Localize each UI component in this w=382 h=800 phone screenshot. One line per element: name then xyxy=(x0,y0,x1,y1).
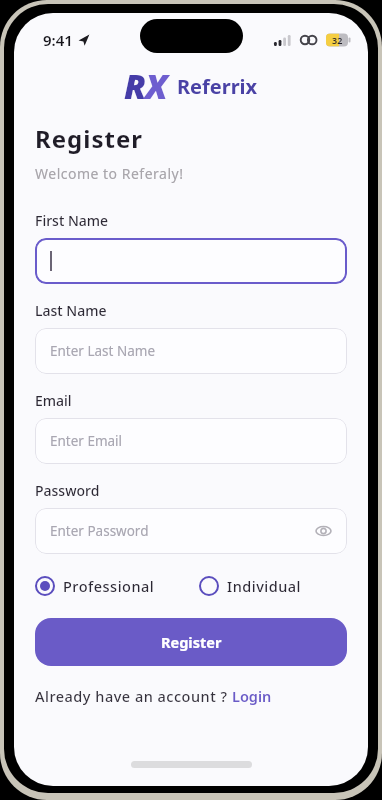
button[interactable] xyxy=(35,238,347,284)
staticText: Professional xyxy=(63,576,155,596)
staticText: Already have an account ? xyxy=(35,686,232,706)
button[interactable]: Enter Last Name xyxy=(35,328,347,374)
button[interactable]: Enter Email xyxy=(35,418,347,464)
button[interactable]: Individual xyxy=(199,576,301,596)
staticText: Enter Password xyxy=(50,522,149,540)
staticText: First Name xyxy=(35,211,109,230)
button[interactable]: Professional xyxy=(35,576,155,596)
button[interactable]: Login xyxy=(232,686,272,706)
staticText: Individual xyxy=(227,576,301,596)
staticText: 32 xyxy=(332,34,343,46)
staticText: Email xyxy=(35,391,72,410)
button[interactable]: Register xyxy=(35,618,347,666)
staticText: Password xyxy=(35,481,100,500)
staticText: Last Name xyxy=(35,301,107,320)
staticText: Register xyxy=(161,632,222,652)
staticText: R xyxy=(124,63,147,109)
staticText: Referrix xyxy=(177,73,258,100)
staticText: Enter Email xyxy=(50,432,123,450)
staticText: Register xyxy=(35,122,143,155)
staticText: 9:41 xyxy=(43,30,73,50)
staticText: X xyxy=(145,63,168,109)
staticText: Welcome to Referaly! xyxy=(35,164,184,183)
staticText: Enter Last Name xyxy=(50,342,155,360)
button[interactable]: Enter Password xyxy=(35,508,347,554)
